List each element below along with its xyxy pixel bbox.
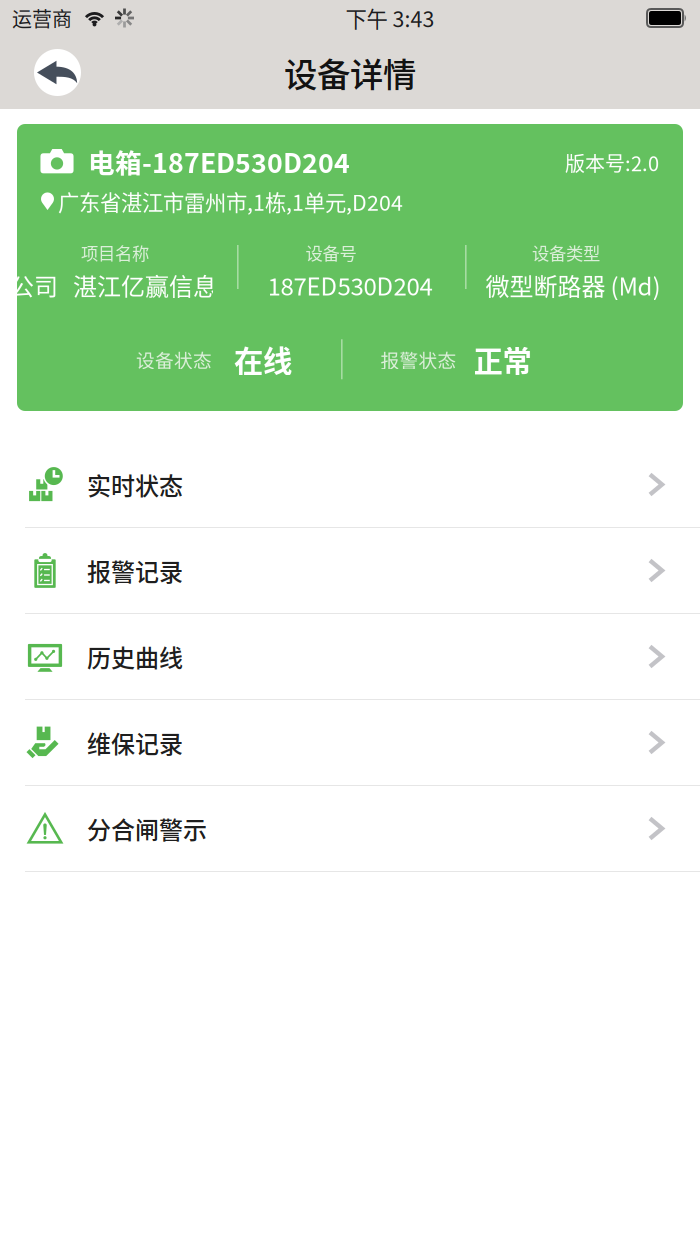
button[interactable]: 维保记录 (0, 700, 700, 786)
button[interactable]: 实时状态 (0, 442, 700, 528)
staticText: 湛江亿赢信息科技有限公司 湛江亿赢信息科技有限公司 (0, 268, 361, 302)
staticText: 设备详情 (284, 48, 416, 97)
staticText: 设备号 (305, 240, 356, 265)
staticText: 运营商 (12, 3, 72, 32)
button[interactable]: 报警记录 (0, 528, 700, 614)
staticText: 187ED530D204 (267, 268, 432, 302)
button[interactable]: 历史曲线 (0, 614, 700, 700)
staticText: 版本号:2.0 (565, 148, 659, 177)
staticText: 实时状态 (87, 467, 183, 502)
button[interactable]: 分合闸警示 (0, 786, 700, 872)
staticText: 维保记录 (87, 725, 183, 760)
staticText: 报警记录 (87, 553, 183, 588)
staticText: 历史曲线 (87, 639, 183, 674)
staticText: 下午 3:43 (345, 3, 434, 33)
button[interactable]: 返回 (34, 49, 81, 96)
staticText: 微型断路器 (Md) (485, 268, 660, 302)
staticText: 分合闸警示 (87, 811, 207, 846)
staticText: 项目名称 (81, 240, 149, 265)
staticText: 在线 (234, 338, 292, 380)
staticText: 报警状态 (381, 346, 457, 373)
staticText: 正常 (474, 338, 532, 380)
staticText: 设备状态 (136, 346, 212, 373)
staticText: 广东省湛江市雷州市,1栋,1单元,D204 (58, 186, 403, 217)
staticText: 电箱-187ED530D204 (88, 142, 350, 181)
staticText: 设备类型 (532, 240, 600, 265)
